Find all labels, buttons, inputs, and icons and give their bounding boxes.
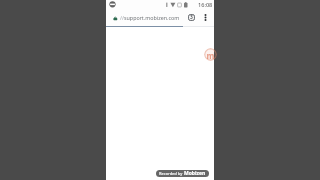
button[interactable]: Mobizen recorder xyxy=(204,48,217,61)
staticText: Recorded by xyxy=(159,171,183,176)
button[interactable]: More options xyxy=(199,11,212,26)
button[interactable]: Switch tabs, 3 tabs xyxy=(184,11,198,26)
staticText: // xyxy=(120,14,124,21)
staticText: 16:08 xyxy=(198,1,213,9)
staticText: Mobizen xyxy=(184,170,206,177)
staticText: 3 xyxy=(190,14,193,21)
staticText: m xyxy=(204,50,217,61)
staticText: support.mobizen.com xyxy=(124,14,180,21)
